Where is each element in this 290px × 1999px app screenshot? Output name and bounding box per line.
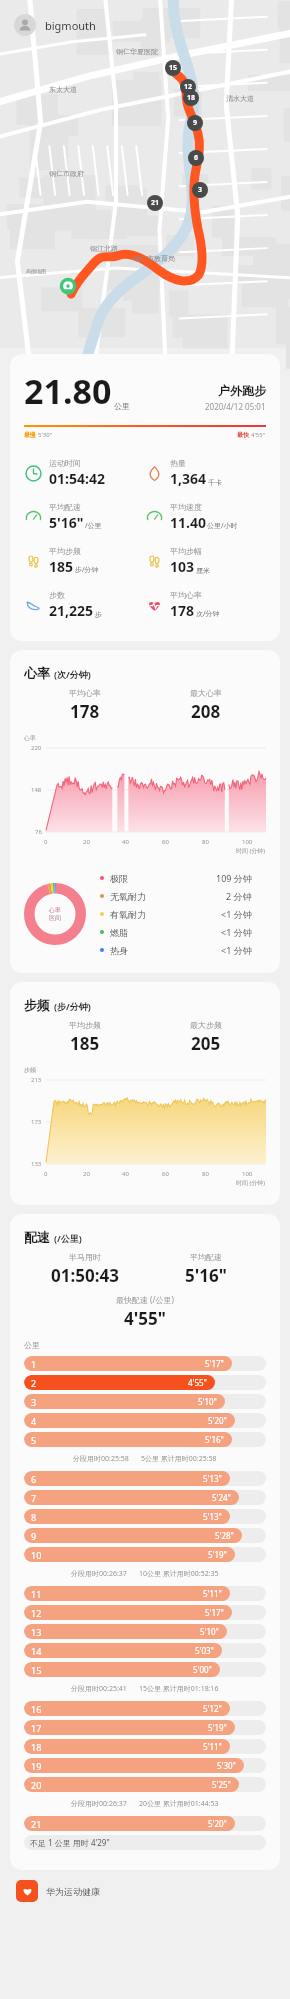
button[interactable]: bigmouth bbox=[14, 14, 290, 36]
staticText: 178 bbox=[170, 601, 195, 620]
button[interactable]: 10 bbox=[24, 1547, 266, 1562]
button[interactable]: 5 bbox=[24, 1432, 266, 1447]
button[interactable]: 17 bbox=[24, 1720, 266, 1735]
staticText: 20 bbox=[83, 1170, 90, 1178]
staticText: 6 bbox=[194, 153, 199, 163]
staticText: 5公里 累计用时00:25:58 bbox=[141, 1454, 217, 1464]
staticText: 平均心率 bbox=[170, 590, 202, 600]
staticText: 公里/小时 bbox=[207, 521, 238, 531]
button[interactable]: 无氧耐力 bbox=[100, 890, 266, 902]
staticText: 5'19" bbox=[208, 1549, 227, 1560]
staticText: 平均配速 bbox=[190, 1252, 222, 1262]
button[interactable]: 20 bbox=[24, 1777, 266, 1792]
button[interactable]: 16 bbox=[24, 1701, 266, 1716]
staticText: 热量 bbox=[170, 458, 186, 468]
staticText: 平均配速 bbox=[49, 502, 81, 512]
button[interactable]: 运动时间 bbox=[24, 458, 145, 488]
staticText: 1 bbox=[31, 1358, 37, 1370]
button[interactable]: 热量 bbox=[145, 458, 266, 488]
button[interactable]: 12 bbox=[24, 1605, 266, 1620]
staticText: 76 bbox=[35, 828, 42, 836]
staticText: 步频 bbox=[24, 997, 50, 1013]
staticText: 5'17" bbox=[205, 1607, 224, 1618]
button[interactable]: 13 bbox=[24, 1624, 266, 1639]
button[interactable]: 19 bbox=[24, 1758, 266, 1773]
staticText: 21 bbox=[31, 1818, 42, 1830]
staticText: 60 bbox=[162, 1170, 169, 1178]
staticText: 19 bbox=[31, 1760, 42, 1772]
staticText: 5 bbox=[31, 1434, 37, 1446]
staticText: 14 bbox=[31, 1645, 42, 1657]
staticText: 5'13" bbox=[203, 1473, 222, 1484]
staticText: 2 bbox=[31, 1377, 37, 1389]
button[interactable]: 华为运动健康 bbox=[16, 1880, 290, 1902]
button[interactable]: 14 bbox=[24, 1643, 266, 1658]
button[interactable]: 21 bbox=[24, 1816, 266, 1831]
staticText: 公里 bbox=[114, 401, 130, 411]
staticText: 心率 bbox=[24, 665, 50, 681]
button[interactable]: 极限 bbox=[100, 872, 266, 884]
staticText: 最快配速 (/公里) bbox=[116, 1294, 174, 1305]
staticText: 5'30" bbox=[217, 1760, 236, 1771]
button[interactable]: 步数 bbox=[24, 590, 145, 620]
staticText: 公里 bbox=[24, 1340, 40, 1350]
button[interactable]: 4 bbox=[24, 1413, 266, 1428]
button[interactable]: 不足 1 公里 用时 4'29" bbox=[24, 1835, 266, 1850]
staticText: 步频 bbox=[24, 1066, 36, 1074]
staticText: 5'30" bbox=[38, 431, 53, 439]
staticText: bigmouth bbox=[45, 18, 96, 33]
staticText: 平均心率 bbox=[69, 688, 101, 698]
button[interactable]: 3 bbox=[24, 1394, 266, 1409]
staticText: 有氧耐力 bbox=[110, 909, 221, 920]
button[interactable]: 6 bbox=[24, 1471, 266, 1486]
staticText: 148 bbox=[31, 786, 42, 794]
button[interactable]: 7 bbox=[24, 1490, 266, 1505]
staticText: 40 bbox=[122, 838, 129, 846]
button[interactable]: 燃脂 bbox=[100, 926, 266, 938]
staticText: 锦江北路 bbox=[90, 244, 118, 253]
staticText: 高德地图 bbox=[26, 268, 46, 274]
staticText: 5'16" bbox=[49, 513, 84, 532]
staticText: 0 bbox=[44, 1170, 48, 1178]
button[interactable]: 9 bbox=[24, 1528, 266, 1543]
button[interactable]: 11 bbox=[24, 1586, 266, 1601]
staticText: 厘米 bbox=[196, 566, 210, 575]
staticText: 9 bbox=[193, 118, 198, 128]
staticText: 1,364 bbox=[170, 469, 207, 488]
staticText: 8 bbox=[31, 1511, 37, 1523]
staticText: 6 bbox=[31, 1473, 37, 1485]
staticText: 5'20" bbox=[208, 1415, 227, 1426]
button[interactable]: 1 bbox=[24, 1356, 266, 1371]
staticText: 213 bbox=[31, 1076, 42, 1084]
staticText: 21,225 bbox=[49, 601, 94, 620]
button[interactable]: 平均步频 bbox=[24, 546, 145, 576]
staticText: 铜仁市教育局 bbox=[133, 254, 175, 263]
staticText: 10公里 累计用时00:52:35 bbox=[139, 1569, 219, 1579]
staticText: 步 bbox=[95, 610, 102, 619]
button[interactable]: 8 bbox=[24, 1509, 266, 1524]
button[interactable]: 平均步幅 bbox=[145, 546, 266, 576]
staticText: 步/分钟 bbox=[75, 565, 99, 575]
button[interactable]: 15 bbox=[24, 1662, 266, 1677]
button[interactable]: 热身 bbox=[100, 944, 266, 956]
staticText: 5'11" bbox=[203, 1741, 222, 1752]
staticText: 18 bbox=[31, 1741, 42, 1753]
button[interactable]: 平均心率 bbox=[145, 590, 266, 620]
staticText: 区间 bbox=[49, 914, 61, 922]
staticText: 平均步频 bbox=[69, 1020, 101, 1030]
staticText: 分段用时00:25:41 bbox=[71, 1684, 127, 1694]
staticText: 60 bbox=[162, 838, 169, 846]
staticText: 12 bbox=[31, 1607, 42, 1619]
button[interactable]: 18 bbox=[24, 1739, 266, 1754]
button[interactable]: 平均速度 bbox=[145, 502, 266, 532]
staticText: 3 bbox=[198, 185, 203, 195]
staticText: 最快 bbox=[237, 431, 249, 439]
staticText: 5'28" bbox=[215, 1530, 234, 1541]
button[interactable]: 2 bbox=[24, 1375, 266, 1390]
staticText: 01:54:42 bbox=[49, 469, 105, 488]
staticText: 0 bbox=[44, 838, 48, 846]
staticText: <1 分钟 bbox=[221, 926, 252, 938]
button[interactable]: 有氧耐力 bbox=[100, 908, 266, 920]
staticText: 无氧耐力 bbox=[110, 891, 226, 902]
button[interactable]: 平均配速 bbox=[24, 502, 145, 532]
